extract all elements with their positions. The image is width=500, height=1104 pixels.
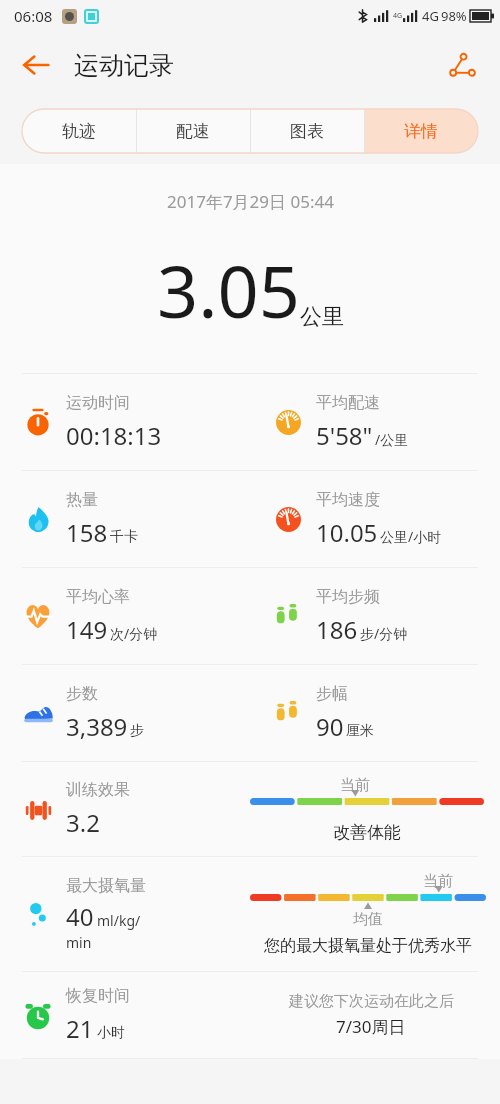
staticText: 公里/小时 xyxy=(380,527,442,546)
button[interactable]: 训练效果 xyxy=(0,762,500,856)
staticText: 40 xyxy=(66,900,94,933)
staticText: 图表 xyxy=(290,121,324,142)
staticText: 次/分钟 xyxy=(110,624,158,643)
staticText: min xyxy=(66,933,92,952)
staticText: 186 xyxy=(316,613,358,646)
button[interactable]: 热量 xyxy=(0,471,250,567)
button[interactable]: 轨迹 xyxy=(22,109,136,153)
button[interactable]: 最大摄氧量 xyxy=(0,857,500,971)
staticText: 平均配速 xyxy=(316,393,380,413)
button[interactable]: 图表 xyxy=(250,109,364,153)
staticText: 轨迹 xyxy=(62,121,96,142)
button[interactable]: 平均步频 xyxy=(250,568,500,664)
button[interactable]: 平均心率 xyxy=(0,568,250,664)
staticText: 当前 xyxy=(340,776,370,795)
staticText: 最大摄氧量 xyxy=(66,876,146,896)
button[interactable]: 平均配速 xyxy=(250,374,500,470)
staticText: 详情 xyxy=(404,121,438,142)
staticText: 千卡 xyxy=(110,528,138,546)
staticText: 3.05 xyxy=(157,241,300,339)
staticText: 厘米 xyxy=(346,722,374,740)
staticText: 您的最大摄氧量处于优秀水平 xyxy=(264,936,472,956)
staticText: 149 xyxy=(66,613,108,646)
staticText: ml/kg/ xyxy=(97,911,141,930)
staticText: 06:08 xyxy=(14,6,53,26)
staticText: 平均心率 xyxy=(66,587,130,607)
staticText: 7/30周日 xyxy=(336,1015,406,1038)
staticText: 步 xyxy=(130,722,144,740)
staticText: 步数 xyxy=(66,684,98,704)
staticText: 10.05 xyxy=(316,516,378,549)
button[interactable]: 配速 xyxy=(136,109,250,153)
staticText: 运动时间 xyxy=(66,393,130,413)
staticText: 改善体能 xyxy=(333,822,401,843)
button[interactable]: 详情 xyxy=(364,109,478,153)
button[interactable]: 平均速度 xyxy=(250,471,500,567)
staticText: 当前 xyxy=(423,872,453,891)
staticText: 热量 xyxy=(66,490,98,510)
staticText: 平均步频 xyxy=(316,587,380,607)
staticText: 00:18:13 xyxy=(66,419,162,452)
button[interactable]: 步幅 xyxy=(250,665,500,761)
staticText: 训练效果 xyxy=(66,780,130,800)
staticText: 步/分钟 xyxy=(360,624,408,643)
staticText: 小时 xyxy=(97,1024,125,1042)
staticText: 5'58" xyxy=(316,419,373,452)
staticText: 配速 xyxy=(176,121,210,142)
staticText: 158 xyxy=(66,516,108,549)
staticText: 平均速度 xyxy=(316,490,380,510)
staticText: 建议您下次运动在此之后 xyxy=(289,992,454,1011)
staticText: 21 xyxy=(66,1012,94,1045)
staticText: 3.2 xyxy=(66,806,100,839)
button[interactable]: 步数 xyxy=(0,665,250,761)
staticText: 3,389 xyxy=(66,710,128,743)
staticText: 运动记录 xyxy=(74,50,174,81)
staticText: 公里 xyxy=(300,303,344,331)
button[interactable]: 恢复时间 xyxy=(0,972,500,1058)
button[interactable]: Share xyxy=(438,41,486,89)
staticText: 4G xyxy=(422,7,439,25)
staticText: 恢复时间 xyxy=(66,986,130,1006)
button[interactable]: 运动时间 xyxy=(0,374,250,470)
staticText: 90 xyxy=(316,710,344,743)
staticText: 均值 xyxy=(353,910,383,929)
staticText: 4G xyxy=(393,11,403,21)
button[interactable]: Back xyxy=(12,41,60,89)
staticText: 步幅 xyxy=(316,684,348,704)
staticText: 98% xyxy=(441,7,467,25)
staticText: 2017年7月29日 05:44 xyxy=(167,190,334,213)
staticText: /公里 xyxy=(375,430,409,449)
